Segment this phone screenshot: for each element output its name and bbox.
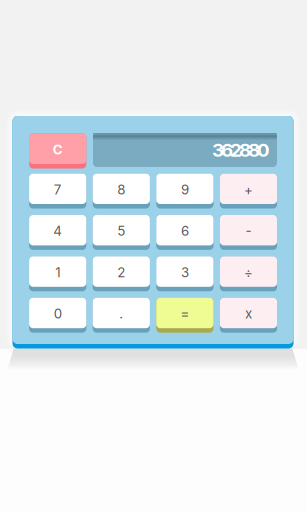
button[interactable]: Display, 362880 xyxy=(93,133,277,167)
staticText: 1 xyxy=(55,264,60,280)
staticText: . xyxy=(119,306,123,322)
staticText: 3 xyxy=(181,264,189,280)
staticText: 2 xyxy=(117,264,125,280)
button[interactable]: 1 xyxy=(29,256,86,291)
staticText: C xyxy=(53,141,63,158)
button[interactable]: 8 xyxy=(93,173,150,208)
staticText: 6 xyxy=(181,223,189,239)
staticText: ÷ xyxy=(244,264,253,280)
button[interactable]: + xyxy=(220,173,277,208)
button[interactable]: C xyxy=(29,133,86,168)
staticText: 0 xyxy=(54,306,62,322)
staticText: 362880 xyxy=(212,139,270,161)
staticText: 4 xyxy=(53,223,62,239)
button[interactable]: 0 xyxy=(29,298,86,333)
button[interactable]: 3 xyxy=(156,256,213,291)
staticText: = xyxy=(180,306,189,322)
staticText: 5 xyxy=(117,223,125,239)
button[interactable]: - xyxy=(220,215,277,250)
button[interactable]: . xyxy=(93,298,150,333)
button[interactable]: 5 xyxy=(93,215,150,250)
button[interactable]: ÷ xyxy=(220,256,277,291)
staticText: 8 xyxy=(117,181,125,198)
button[interactable]: 6 xyxy=(156,215,213,250)
button[interactable]: x xyxy=(220,298,277,333)
button[interactable]: 7 xyxy=(29,173,86,208)
button[interactable]: 2 xyxy=(93,256,150,291)
button[interactable]: = xyxy=(156,298,213,333)
staticText: - xyxy=(245,223,251,239)
staticText: x xyxy=(245,306,252,322)
button[interactable]: 4 xyxy=(29,215,86,250)
staticText: 9 xyxy=(181,181,189,198)
button[interactable]: 9 xyxy=(156,173,213,208)
staticText: 7 xyxy=(54,181,62,198)
staticText: + xyxy=(244,181,253,198)
